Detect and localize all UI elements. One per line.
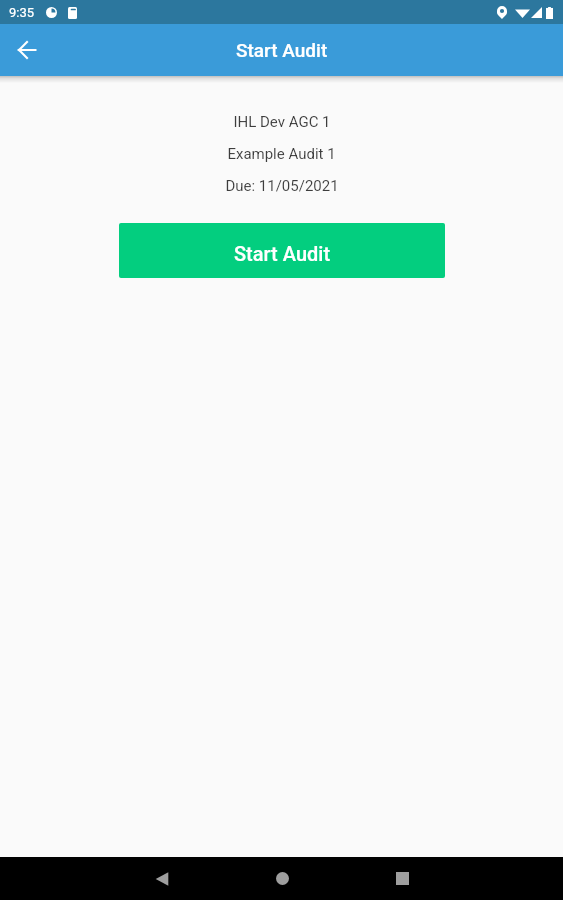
button[interactable]: Home (252, 857, 312, 900)
button[interactable]: Start Audit (119, 223, 445, 278)
staticText: Due: 11/05/2021 (225, 177, 339, 195)
staticText: IHL Dev AGC 1 (233, 113, 331, 131)
button[interactable]: Back (132, 857, 192, 900)
staticText: Start Audit (236, 39, 328, 61)
staticText: Start Audit (234, 242, 331, 265)
button[interactable]: Recent apps (372, 857, 432, 900)
button[interactable]: Back (7, 31, 46, 70)
staticText: 9:35 (9, 5, 35, 20)
staticText: Example Audit 1 (227, 145, 336, 163)
